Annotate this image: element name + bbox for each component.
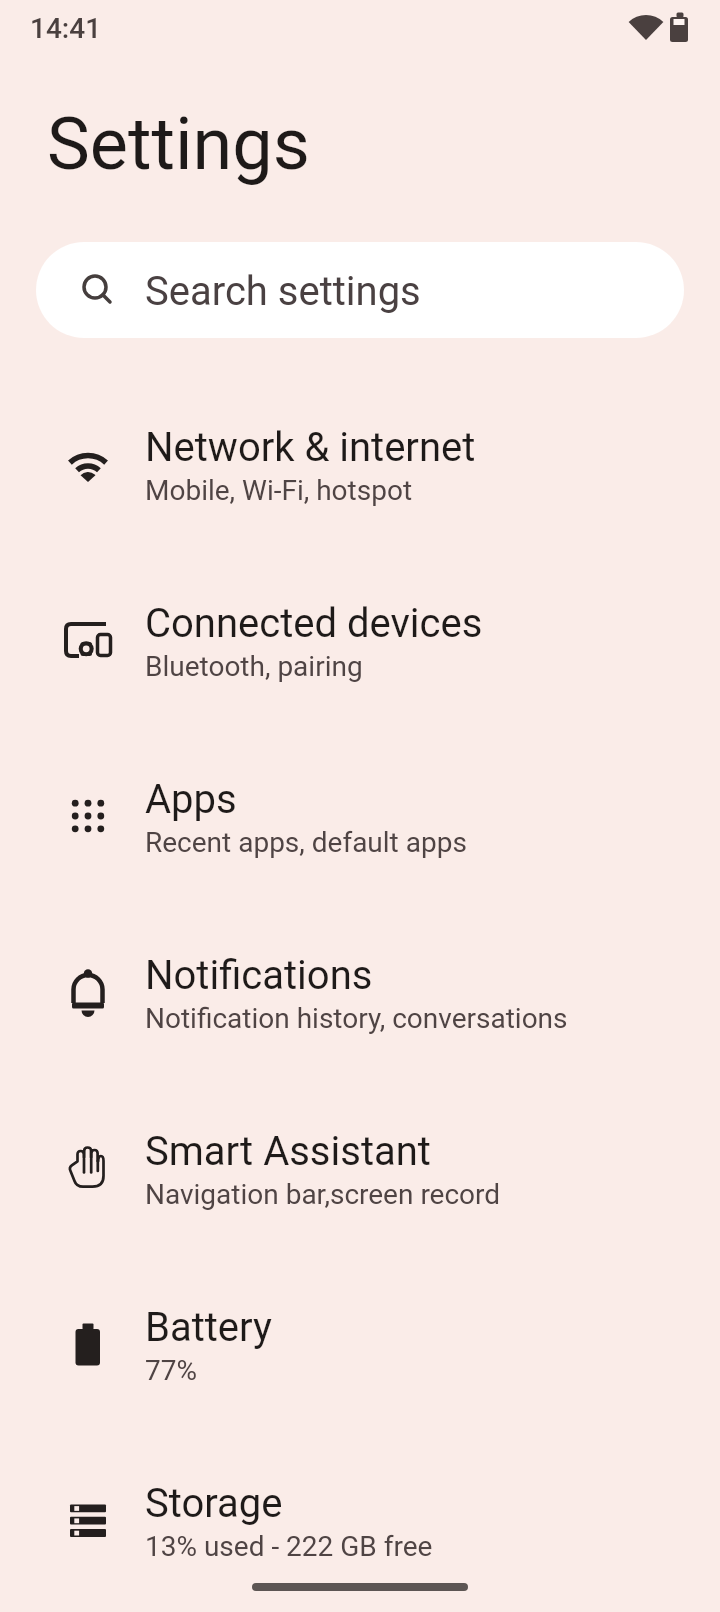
staticText: Mobile, Wi-Fi, hotspot xyxy=(145,474,413,507)
button[interactable]: Battery xyxy=(0,1260,720,1436)
button[interactable]: Search settings xyxy=(36,242,684,338)
button[interactable]: Apps xyxy=(0,732,720,908)
button[interactable]: Smart Assistant xyxy=(0,1084,720,1260)
staticText: Settings xyxy=(47,102,310,186)
staticText: Search settings xyxy=(145,268,421,315)
button[interactable]: Storage xyxy=(0,1436,720,1612)
staticText: Notification history, conversations xyxy=(145,1002,568,1035)
button[interactable]: Connected devices xyxy=(0,556,720,732)
staticText: Storage xyxy=(145,1480,283,1527)
staticText: Recent apps, default apps xyxy=(145,826,467,859)
staticText: Connected devices xyxy=(145,600,483,647)
staticText: Smart Assistant xyxy=(145,1128,431,1175)
staticText: Notifications xyxy=(145,952,373,999)
staticText: Network & internet xyxy=(145,424,476,471)
button[interactable]: Notifications xyxy=(0,908,720,1084)
staticText: Battery xyxy=(145,1304,272,1351)
staticText: Apps xyxy=(145,776,237,823)
staticText: Navigation bar,screen record xyxy=(145,1178,501,1211)
staticText: Bluetooth, pairing xyxy=(145,650,363,683)
staticText: 13% used - 222 GB free xyxy=(145,1530,433,1563)
staticText: 14:41 xyxy=(30,12,102,45)
staticText: 77% xyxy=(145,1354,197,1387)
button[interactable]: Network & internet xyxy=(0,380,720,556)
